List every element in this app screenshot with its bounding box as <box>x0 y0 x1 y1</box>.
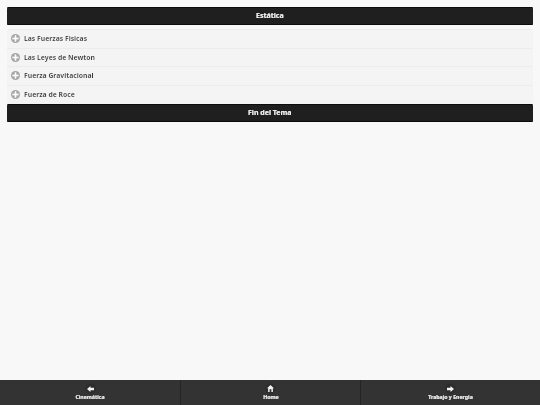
staticText: Las Fuerzas Fisicas <box>24 34 88 43</box>
staticText: Cinemática <box>75 393 105 400</box>
staticText: Las Leyes de Newton <box>24 53 95 62</box>
staticText: Fuerza Gravitacional <box>24 71 94 80</box>
button[interactable]: Estática <box>7 7 533 25</box>
staticText: Fuerza de Roce <box>24 90 75 99</box>
button[interactable]: Fin del Tema <box>7 104 533 122</box>
button[interactable]: Fuerza Gravitacional <box>7 66 533 85</box>
staticText: Fin del Tema <box>248 108 292 118</box>
staticText: Trabajo y Energia <box>428 393 473 400</box>
staticText: Estática <box>256 11 284 21</box>
button[interactable]: Las Fuerzas Fisicas <box>7 29 533 48</box>
staticText: Home <box>263 393 279 400</box>
button[interactable]: Las Leyes de Newton <box>7 48 533 66</box>
button[interactable]: Fuerza de Roce <box>7 85 533 104</box>
button[interactable]: Previous topic Cinemática <box>0 380 180 405</box>
button[interactable]: Home <box>181 380 360 405</box>
button[interactable]: Next topic Trabajo y Energia <box>361 380 540 405</box>
